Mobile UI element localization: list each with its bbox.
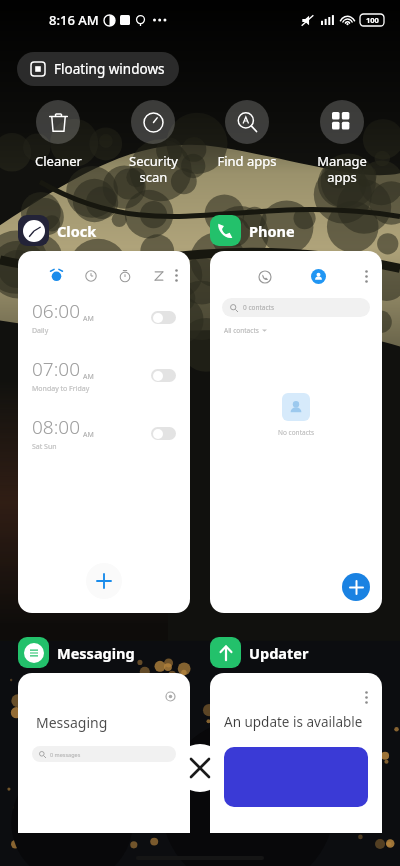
staticText: 08:00	[32, 414, 81, 440]
button[interactable]: 06:00	[18, 251, 190, 613]
button[interactable]: 08:00	[32, 414, 176, 452]
staticText: Sat Sun	[32, 442, 57, 452]
button[interactable]: 0 contacts	[222, 298, 370, 317]
staticText: Floating windows	[54, 60, 165, 78]
button[interactable]: Messaging	[18, 673, 190, 833]
button[interactable]: Find apps	[203, 98, 291, 172]
staticText: AM	[83, 430, 94, 440]
button[interactable]: Security scan	[109, 98, 197, 187]
staticText: 0 messages	[50, 751, 81, 758]
staticText: Daily	[32, 326, 49, 336]
staticText: Phone	[249, 221, 295, 241]
button[interactable]: Manage apps	[298, 98, 386, 187]
staticText: AM	[83, 314, 94, 324]
button[interactable]: 0 contacts	[210, 251, 382, 613]
staticText: Manage apps	[317, 152, 367, 185]
button[interactable]: An update is available	[210, 673, 382, 833]
button[interactable]: Add contact	[342, 573, 370, 601]
staticText: Updater	[249, 643, 309, 663]
button[interactable]: Messaging	[18, 637, 139, 668]
button[interactable]: 06:00	[32, 298, 176, 336]
staticText: Find apps	[217, 152, 277, 170]
staticText: An update is available	[224, 713, 363, 731]
button[interactable]: 07:00	[32, 356, 176, 394]
button[interactable]	[151, 427, 176, 440]
button[interactable]	[151, 369, 176, 382]
button[interactable]: Phone	[210, 215, 299, 246]
staticText: 8:16 AM	[49, 11, 99, 29]
staticText: 100	[366, 15, 379, 25]
button[interactable]: Close all	[176, 744, 224, 792]
staticText: 06:00	[32, 298, 81, 324]
staticText: 0 contacts	[243, 303, 275, 312]
button[interactable]: Clock	[18, 215, 101, 246]
button[interactable]: Floating windows	[17, 52, 179, 86]
staticText: 07:00	[32, 356, 81, 382]
button[interactable]	[151, 311, 176, 324]
staticText: Cleaner	[35, 152, 82, 170]
staticText: Messaging	[36, 713, 108, 732]
button[interactable]: Add alarm	[86, 563, 122, 599]
button[interactable]: Updater	[210, 637, 313, 668]
staticText: Monday to Friday	[32, 384, 90, 394]
staticText: Clock	[57, 221, 97, 241]
staticText: Messaging	[57, 643, 135, 663]
staticText: No contacts	[278, 428, 315, 437]
button[interactable]: Cleaner	[14, 98, 102, 172]
staticText: All contacts	[224, 326, 259, 335]
button[interactable]: 0 messages	[32, 746, 176, 762]
staticText: AM	[83, 372, 94, 382]
staticText: Security scan	[129, 152, 178, 185]
